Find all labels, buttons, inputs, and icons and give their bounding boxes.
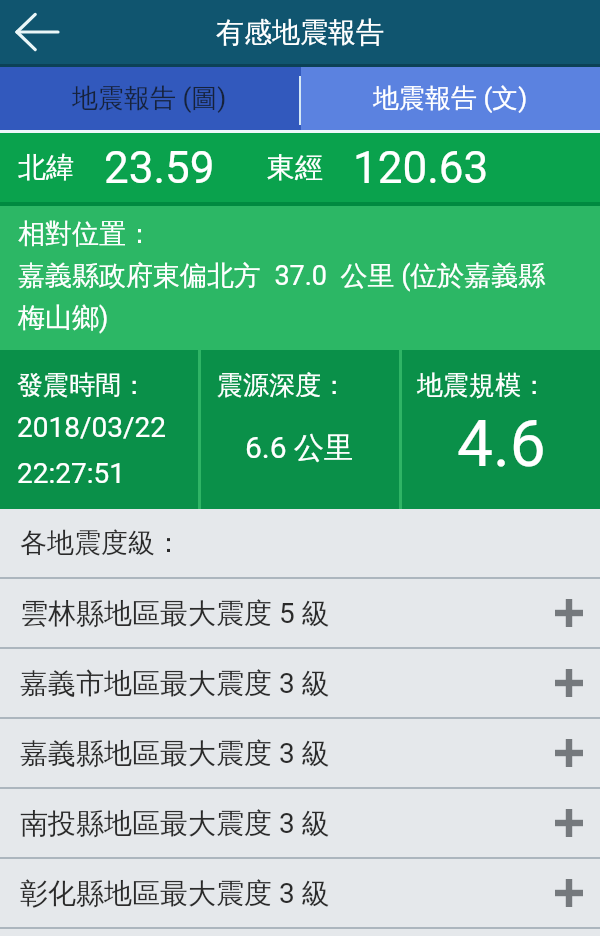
button[interactable]: 地震報告 (文) bbox=[301, 67, 600, 130]
button[interactable]: 雲林縣地區最大震度 5 級 bbox=[0, 579, 600, 647]
staticText: 地震報告 (文) bbox=[373, 82, 528, 115]
button[interactable] bbox=[12, 0, 64, 64]
staticText: 南投縣地區最大震度 3 級 bbox=[20, 806, 330, 841]
button[interactable]: 彰化縣地區最大震度 3 級 bbox=[0, 859, 600, 927]
staticText: 23.59 bbox=[104, 142, 215, 194]
staticText: 相對位置： bbox=[18, 217, 153, 251]
button[interactable]: 有感地震報告 bbox=[0, 0, 600, 64]
button[interactable]: 南投縣地區最大震度 3 級 bbox=[0, 789, 600, 857]
staticText: 嘉義縣政府東偏北方 37.0 公里 (位於嘉義縣 bbox=[18, 259, 546, 293]
button[interactable]: 嘉義市地區最大震度 3 級 bbox=[0, 649, 600, 717]
staticText: 2018/03/22 bbox=[17, 411, 166, 444]
staticText: 東經 bbox=[267, 150, 323, 185]
staticText: 發震時間： bbox=[17, 369, 147, 402]
staticText: 嘉義縣地區最大震度 3 級 bbox=[20, 736, 330, 771]
button[interactable]: 地震報告 (圖) bbox=[0, 67, 299, 130]
staticText: 雲林縣地區最大震度 5 級 bbox=[20, 596, 330, 631]
staticText: 各地震度級： bbox=[20, 526, 182, 560]
staticText: 嘉義市地區最大震度 3 級 bbox=[20, 666, 330, 701]
staticText: 6.6 公里 bbox=[245, 429, 355, 467]
staticText: 北緯 bbox=[18, 150, 74, 185]
staticText: 4.6 bbox=[457, 407, 546, 482]
staticText: 震源深度： bbox=[217, 369, 347, 402]
staticText: 有感地震報告 bbox=[216, 15, 384, 50]
button[interactable]: 嘉義縣地區最大震度 3 級 bbox=[0, 719, 600, 787]
staticText: 梅山鄉) bbox=[18, 301, 109, 335]
staticText: 彰化縣地區最大震度 3 級 bbox=[20, 876, 330, 911]
staticText: 地震報告 (圖) bbox=[72, 82, 227, 115]
staticText: 地震規模： bbox=[417, 369, 547, 402]
staticText: 22:27:51 bbox=[17, 457, 125, 490]
staticText: 120.63 bbox=[353, 142, 489, 194]
